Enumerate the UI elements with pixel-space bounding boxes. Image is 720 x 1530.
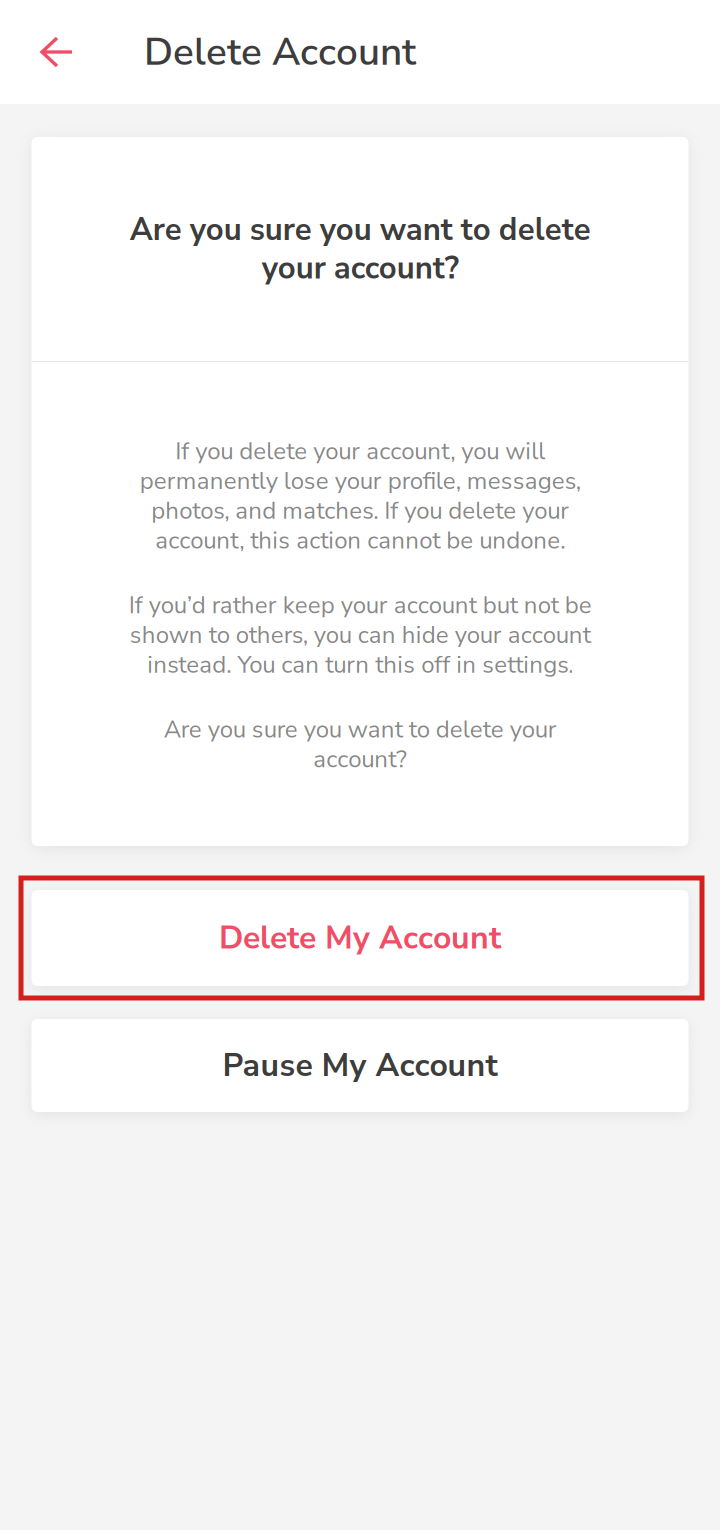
button[interactable]: Pause My Account (31, 1019, 688, 1112)
staticText: Pause My Account (222, 1044, 497, 1087)
button[interactable]: Back (0, 0, 112, 104)
button[interactable]: Delete My Account (31, 890, 688, 986)
staticText: Are you sure you want to delete your acc… (129, 209, 590, 289)
staticText: Delete Account (144, 26, 416, 78)
staticText: If you’d rather keep your account but no… (128, 589, 591, 681)
staticText: Delete My Account (219, 916, 501, 960)
staticText: If you delete your account, you will per… (139, 435, 580, 557)
staticText: Are you sure you want to delete your acc… (163, 713, 556, 776)
